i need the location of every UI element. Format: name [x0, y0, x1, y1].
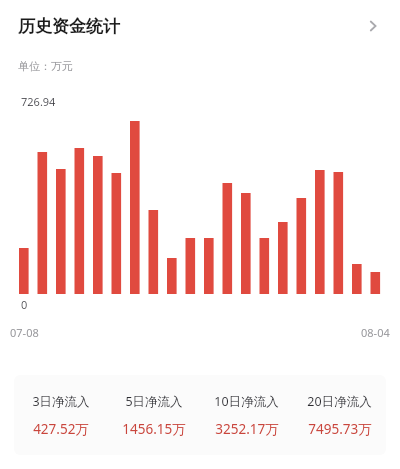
staticText: 7495.73万 — [308, 420, 372, 438]
staticText: 20日净流入 — [307, 393, 372, 410]
button[interactable]: 历史资金统计 — [0, 0, 400, 52]
staticText: 1456.15万 — [122, 420, 186, 438]
staticText: 5日净流入 — [125, 393, 183, 410]
staticText: 3日净流入 — [32, 393, 90, 410]
staticText: 历史资金统计 — [18, 16, 120, 37]
staticText: 07-08 — [10, 325, 39, 340]
staticText: 08-04 — [361, 325, 390, 340]
other: More — [358, 11, 388, 41]
staticText: 10日净流入 — [214, 393, 279, 410]
staticText: 427.52万 — [33, 420, 89, 438]
button[interactable]: 3日净流入 — [14, 375, 386, 455]
staticText: 3252.17万 — [215, 420, 279, 438]
staticText: 0 — [21, 297, 28, 312]
staticText: 726.94 — [21, 94, 56, 109]
staticText: 单位：万元 — [18, 59, 73, 73]
